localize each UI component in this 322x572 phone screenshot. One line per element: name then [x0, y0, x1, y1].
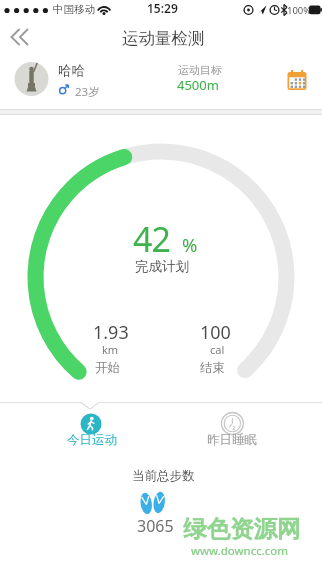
staticText: cal — [210, 342, 225, 357]
staticText: 中国移动 — [53, 3, 95, 16]
staticText: 今日运动 — [67, 432, 117, 448]
staticText: 15:29 — [147, 0, 178, 16]
staticText: 完成计划 — [135, 258, 189, 275]
staticText: 23岁 — [75, 84, 100, 100]
staticText: 运动目标 — [178, 63, 222, 77]
staticText: 100% — [287, 4, 312, 17]
staticText: 运动量检测 — [122, 28, 205, 49]
staticText: 绿色资源网 — [183, 514, 301, 544]
staticText: 42 — [133, 216, 170, 262]
staticText: www.downcc.com — [191, 543, 289, 559]
staticText: 4500m — [177, 76, 219, 94]
staticText: 1.93 — [93, 320, 129, 345]
staticText: 结束 — [200, 360, 225, 376]
staticText: 100 — [200, 320, 231, 345]
staticText: 开始 — [95, 360, 120, 376]
staticText: 当前总步数 — [132, 468, 195, 484]
staticText: 哈哈 — [58, 62, 85, 79]
staticText: km — [102, 342, 119, 357]
staticText: % — [182, 232, 198, 257]
staticText: 3065 — [137, 515, 174, 537]
staticText: 昨日睡眠 — [207, 432, 257, 448]
